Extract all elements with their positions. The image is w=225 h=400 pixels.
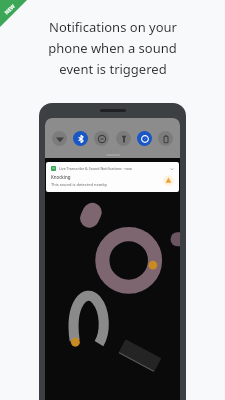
button[interactable]: Location	[137, 131, 152, 146]
staticText: Notifications on your	[49, 18, 177, 36]
button[interactable]: Bluetooth	[73, 131, 88, 146]
staticText: Live Transcribe & Sound Notifications · …	[59, 166, 132, 171]
staticText: NEW	[3, 3, 17, 16]
button[interactable]: Wi-Fi	[52, 131, 67, 146]
staticText: phone when a sound	[48, 39, 177, 57]
button[interactable]: Flashlight	[116, 131, 131, 146]
staticText: event is triggered	[59, 60, 167, 78]
button[interactable]: Live Transcribe & Sound Notifications · …	[46, 162, 179, 192]
button[interactable]: Battery saver	[158, 131, 173, 146]
button[interactable]: Do not disturb	[94, 131, 109, 146]
staticText: This sound is detected nearby	[51, 182, 108, 187]
staticText: Knocking	[51, 174, 71, 180]
